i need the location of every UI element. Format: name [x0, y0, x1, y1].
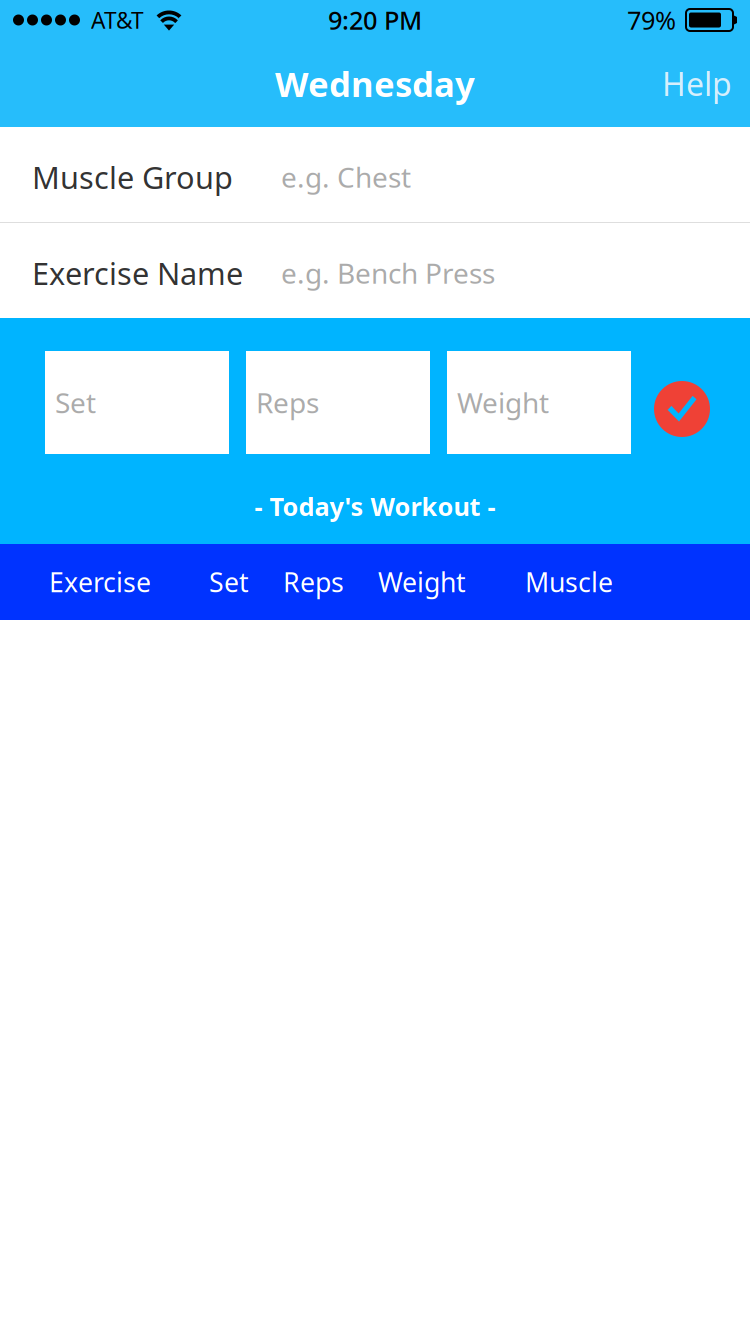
staticText: Weight — [457, 384, 549, 421]
staticText: Weight — [378, 564, 466, 600]
button[interactable]: Reps — [246, 351, 430, 454]
staticText: Reps — [283, 564, 344, 600]
staticText: - Today's Workout - — [254, 489, 495, 523]
staticText: Exercise Name — [32, 253, 243, 293]
button[interactable]: Muscle Group — [0, 127, 750, 222]
button[interactable]: Exercise Name — [0, 223, 750, 318]
staticText: e.g. Bench Press — [281, 254, 495, 292]
staticText: 9:20 PM — [328, 3, 422, 37]
button[interactable]: Set — [45, 351, 229, 454]
staticText: Help — [662, 62, 732, 105]
staticText: Exercise — [49, 564, 151, 600]
staticText: 79% — [627, 3, 676, 37]
button[interactable]: Weight — [447, 351, 631, 454]
staticText: e.g. Chest — [281, 158, 411, 196]
staticText: Muscle Group — [32, 157, 233, 197]
staticText: Muscle — [525, 564, 613, 600]
button[interactable]: Help — [644, 50, 750, 117]
staticText: Set — [55, 384, 96, 421]
button[interactable]: Add exercise — [649, 376, 715, 442]
staticText: AT&T — [91, 5, 144, 35]
staticText: Wednesday — [275, 60, 475, 106]
staticText: Set — [209, 564, 249, 600]
staticText: Reps — [256, 384, 319, 421]
